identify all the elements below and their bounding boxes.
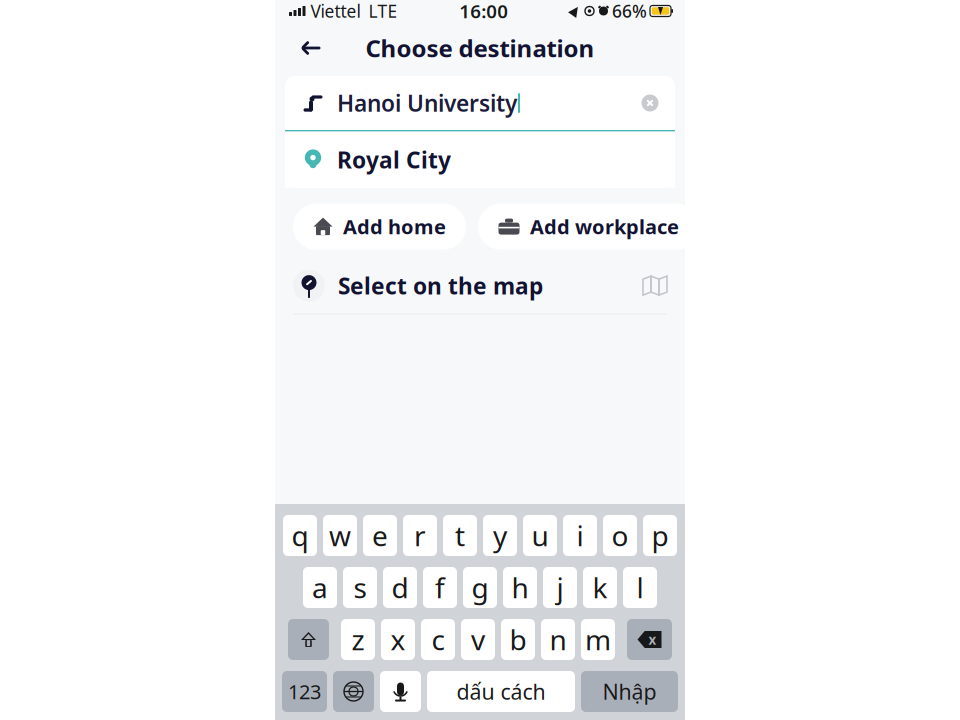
staticText: s (353, 569, 366, 606)
staticText: f (435, 569, 445, 606)
staticText: 123 (288, 678, 321, 705)
button[interactable]: n (541, 619, 575, 660)
button[interactable]: k (583, 567, 617, 608)
button[interactable]: Nhập (581, 671, 678, 712)
staticText: k (592, 569, 607, 606)
staticText: n (549, 621, 566, 658)
button[interactable]: s (343, 567, 377, 608)
button[interactable]: h (503, 567, 537, 608)
staticText: z (351, 621, 364, 658)
staticText: Select on the map (338, 270, 543, 301)
button[interactable]: b (501, 619, 535, 660)
button[interactable]: w (323, 515, 357, 556)
button[interactable]: c (421, 619, 455, 660)
staticText: m (585, 621, 611, 658)
button[interactable]: d (383, 567, 417, 608)
staticText: e (372, 517, 388, 554)
button[interactable]: Dictate (380, 671, 421, 712)
button[interactable]: e (363, 515, 397, 556)
staticText: o (611, 517, 628, 554)
button[interactable]: g (463, 567, 497, 608)
staticText: a (312, 569, 328, 606)
button[interactable]: u (523, 515, 557, 556)
button[interactable]: Select on the map (275, 258, 685, 314)
staticText: dấu cách (456, 677, 545, 706)
staticText: h (511, 569, 528, 606)
staticText: i (576, 517, 583, 554)
button[interactable]: y (483, 515, 517, 556)
button[interactable]: Back (289, 30, 333, 66)
button[interactable]: Clear text (633, 86, 667, 120)
staticText: d (391, 569, 408, 606)
staticText: t (455, 517, 465, 554)
staticText: g (471, 569, 488, 606)
button[interactable]: Royal City (285, 132, 675, 188)
button[interactable]: x (381, 619, 415, 660)
button[interactable]: Add home (293, 204, 466, 250)
staticText: 66% (612, 0, 647, 22)
staticText: b (509, 621, 526, 658)
staticText: l (636, 569, 643, 606)
staticText: x (390, 621, 405, 658)
staticText: r (414, 517, 426, 554)
staticText: x (648, 631, 656, 648)
staticText: Add workplace (530, 213, 679, 240)
button[interactable]: Next keyboard (333, 671, 374, 712)
staticText: q (291, 517, 308, 554)
button[interactable]: q (283, 515, 317, 556)
button[interactable]: o (603, 515, 637, 556)
staticText: Nhập (602, 677, 656, 706)
staticText: Royal City (337, 144, 451, 175)
button[interactable]: dấu cách (427, 671, 575, 712)
staticText: Add home (343, 213, 446, 240)
button[interactable]: j (543, 567, 577, 608)
staticText: j (556, 569, 563, 606)
button[interactable]: t (443, 515, 477, 556)
button[interactable]: r (403, 515, 437, 556)
staticText: Hanoi University (337, 88, 517, 118)
staticText: LTE (368, 0, 397, 22)
staticText: c (431, 621, 444, 658)
button[interactable]: p (643, 515, 677, 556)
button[interactable]: Delete (627, 619, 672, 660)
staticText: y (493, 517, 507, 554)
button[interactable]: v (461, 619, 495, 660)
staticText: w (329, 517, 351, 554)
staticText: Viettel (310, 0, 360, 22)
staticText: v (471, 621, 485, 658)
button[interactable]: 123 (282, 671, 327, 712)
button[interactable]: f (423, 567, 457, 608)
button[interactable]: i (563, 515, 597, 556)
staticText: u (531, 517, 548, 554)
staticText: 16:00 (459, 0, 508, 23)
button[interactable]: Add workplace (478, 204, 699, 250)
button[interactable]: l (623, 567, 657, 608)
button[interactable]: z (341, 619, 375, 660)
button[interactable]: a (303, 567, 337, 608)
button[interactable]: m (581, 619, 615, 660)
button[interactable]: Shift (288, 619, 329, 660)
staticText: Choose destination (365, 32, 594, 64)
staticText: p (651, 517, 668, 554)
